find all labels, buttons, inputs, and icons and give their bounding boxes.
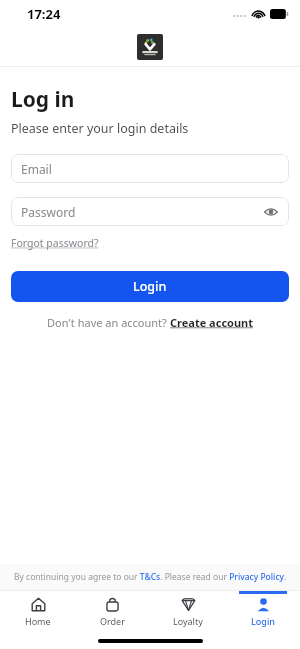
staticText: Login xyxy=(133,278,167,295)
button[interactable]: Show password xyxy=(262,203,280,221)
staticText: Email xyxy=(21,161,52,177)
staticText: Login xyxy=(251,615,275,627)
button[interactable]: Home xyxy=(0,591,75,633)
staticText: Order xyxy=(100,615,125,627)
staticText: Password xyxy=(21,204,76,220)
button[interactable]: Create account xyxy=(170,315,254,330)
staticText: By continuing you agree to our T&Cs. Ple… xyxy=(14,571,287,583)
button[interactable]: Loyalty xyxy=(150,591,225,633)
staticText: Loyalty xyxy=(173,615,203,627)
staticText: Log in xyxy=(11,85,75,114)
staticText: 17:24 xyxy=(27,5,61,23)
button[interactable]: Login xyxy=(11,271,289,302)
staticText: Please enter your login details xyxy=(11,120,189,137)
button[interactable]: Password xyxy=(11,197,289,226)
staticText: Home xyxy=(25,615,51,627)
button[interactable]: Email xyxy=(11,154,289,183)
staticText: Don't have an account? xyxy=(47,315,170,330)
button[interactable]: Forgot password? xyxy=(11,236,99,250)
button[interactable]: Order xyxy=(75,591,150,633)
button[interactable]: Login xyxy=(225,591,300,633)
